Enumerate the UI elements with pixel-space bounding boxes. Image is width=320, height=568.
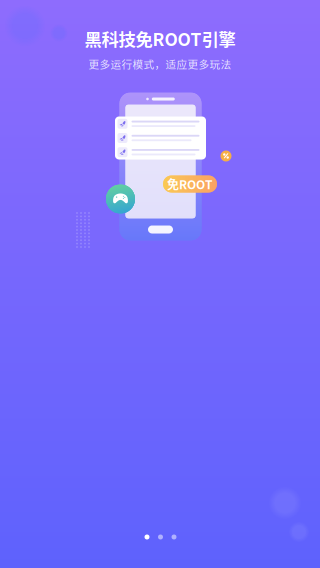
staticText: 黑科技免ROOT引擎 <box>84 26 235 51</box>
button[interactable]: 免ROOT <box>163 175 217 192</box>
staticText: 免ROOT <box>167 175 213 193</box>
staticText: 更多运行模式，适应更多玩法 <box>88 56 231 71</box>
